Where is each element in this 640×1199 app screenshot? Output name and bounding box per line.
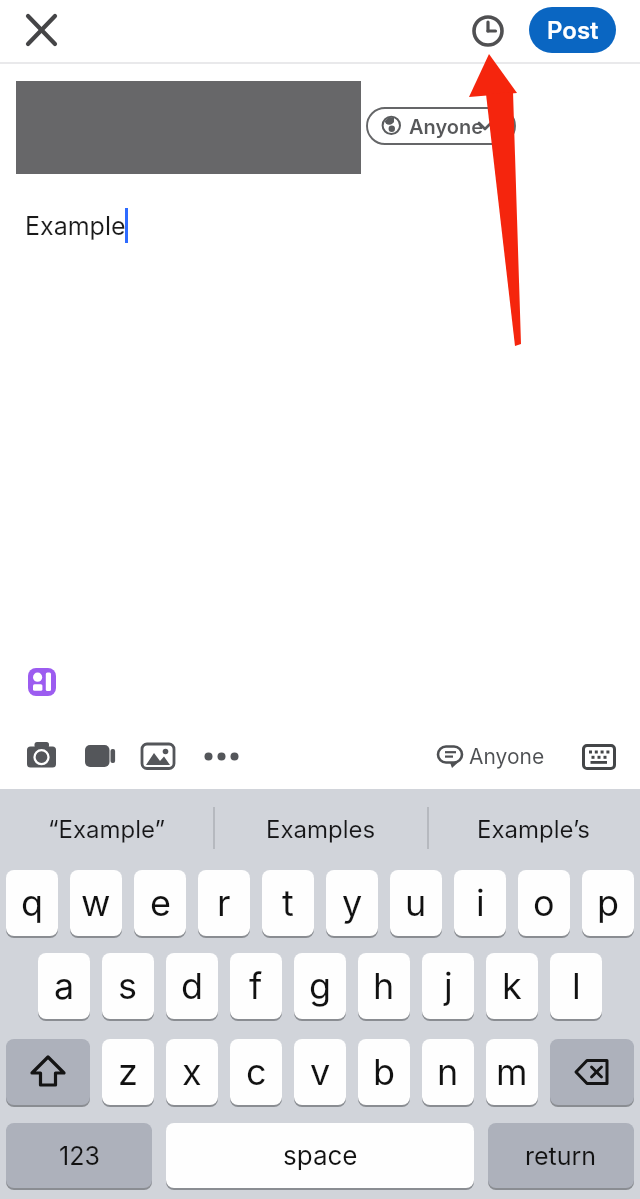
button[interactable]: Examples	[214, 793, 428, 865]
staticText: d	[181, 964, 204, 1008]
staticText: o	[533, 881, 555, 925]
button[interactable]: l	[550, 953, 602, 1019]
button[interactable]	[550, 1039, 634, 1105]
button[interactable]: “Example”	[0, 793, 214, 865]
button[interactable]: m	[486, 1039, 538, 1105]
button[interactable]: t	[262, 870, 314, 936]
staticText: Example’s	[477, 815, 591, 844]
staticText: Post	[547, 16, 599, 45]
button[interactable]: c	[230, 1039, 282, 1105]
button[interactable]: Anyone	[432, 738, 550, 774]
button[interactable]: Example’s	[428, 793, 640, 865]
button[interactable]: Post	[529, 7, 616, 53]
button[interactable]: a	[38, 953, 90, 1019]
button[interactable]: e	[134, 870, 186, 936]
button[interactable]: p	[582, 870, 634, 936]
staticText: space	[283, 1140, 358, 1171]
button[interactable]: 123	[6, 1123, 152, 1188]
staticText: Examples	[266, 815, 376, 844]
staticText: 123	[59, 1141, 100, 1171]
staticText: Example	[25, 211, 126, 241]
button[interactable]	[82, 740, 118, 772]
staticText: g	[309, 964, 332, 1008]
button[interactable]: z	[102, 1039, 154, 1105]
button[interactable]: f	[230, 953, 282, 1019]
button[interactable]: Anyone	[366, 107, 516, 145]
button[interactable]: y	[326, 870, 378, 936]
button[interactable]	[24, 738, 60, 774]
staticText: b	[373, 1050, 396, 1094]
staticText: s	[118, 964, 138, 1008]
button[interactable]: return	[488, 1123, 634, 1188]
staticText: a	[54, 964, 75, 1008]
button[interactable]: k	[486, 953, 538, 1019]
staticText: Anyone	[469, 744, 545, 769]
button[interactable]	[6, 1039, 90, 1105]
staticText: e	[150, 881, 171, 925]
staticText: c	[246, 1050, 267, 1094]
button[interactable]: v	[294, 1039, 346, 1105]
staticText: r	[217, 881, 231, 925]
button[interactable]: r	[198, 870, 250, 936]
button[interactable]: w	[70, 870, 122, 936]
staticText: k	[502, 964, 522, 1008]
button[interactable]	[28, 668, 56, 696]
staticText: h	[373, 964, 395, 1008]
staticText: n	[437, 1050, 459, 1094]
staticText: w	[81, 881, 111, 925]
staticText: j	[444, 964, 453, 1008]
staticText: Anyone	[409, 115, 484, 139]
button[interactable]	[466, 9, 510, 53]
button[interactable]	[18, 6, 66, 54]
staticText: q	[21, 881, 44, 925]
button[interactable]	[198, 740, 242, 772]
staticText: u	[405, 881, 427, 925]
button[interactable]	[578, 738, 618, 774]
button[interactable]: n	[422, 1039, 474, 1105]
button[interactable]: x	[166, 1039, 218, 1105]
staticText: z	[118, 1050, 138, 1094]
button[interactable]: j	[422, 953, 474, 1019]
staticText: v	[310, 1050, 331, 1094]
staticText: f	[249, 964, 263, 1008]
staticText: p	[597, 881, 620, 925]
staticText: return	[525, 1141, 597, 1171]
button[interactable]: d	[166, 953, 218, 1019]
button[interactable]: u	[390, 870, 442, 936]
button[interactable]: o	[518, 870, 570, 936]
button[interactable]: space	[166, 1123, 474, 1188]
staticText: i	[476, 881, 485, 925]
button[interactable]: s	[102, 953, 154, 1019]
button[interactable]: q	[6, 870, 58, 936]
staticText: “Example”	[48, 815, 166, 844]
button[interactable]: b	[358, 1039, 410, 1105]
button[interactable]: i	[454, 870, 506, 936]
staticText: t	[282, 881, 294, 925]
button[interactable]: g	[294, 953, 346, 1019]
staticText: l	[572, 964, 581, 1008]
staticText: m	[496, 1050, 528, 1094]
staticText: x	[182, 1050, 202, 1094]
button[interactable]: h	[358, 953, 410, 1019]
staticText: y	[342, 881, 363, 925]
button[interactable]	[140, 740, 176, 772]
